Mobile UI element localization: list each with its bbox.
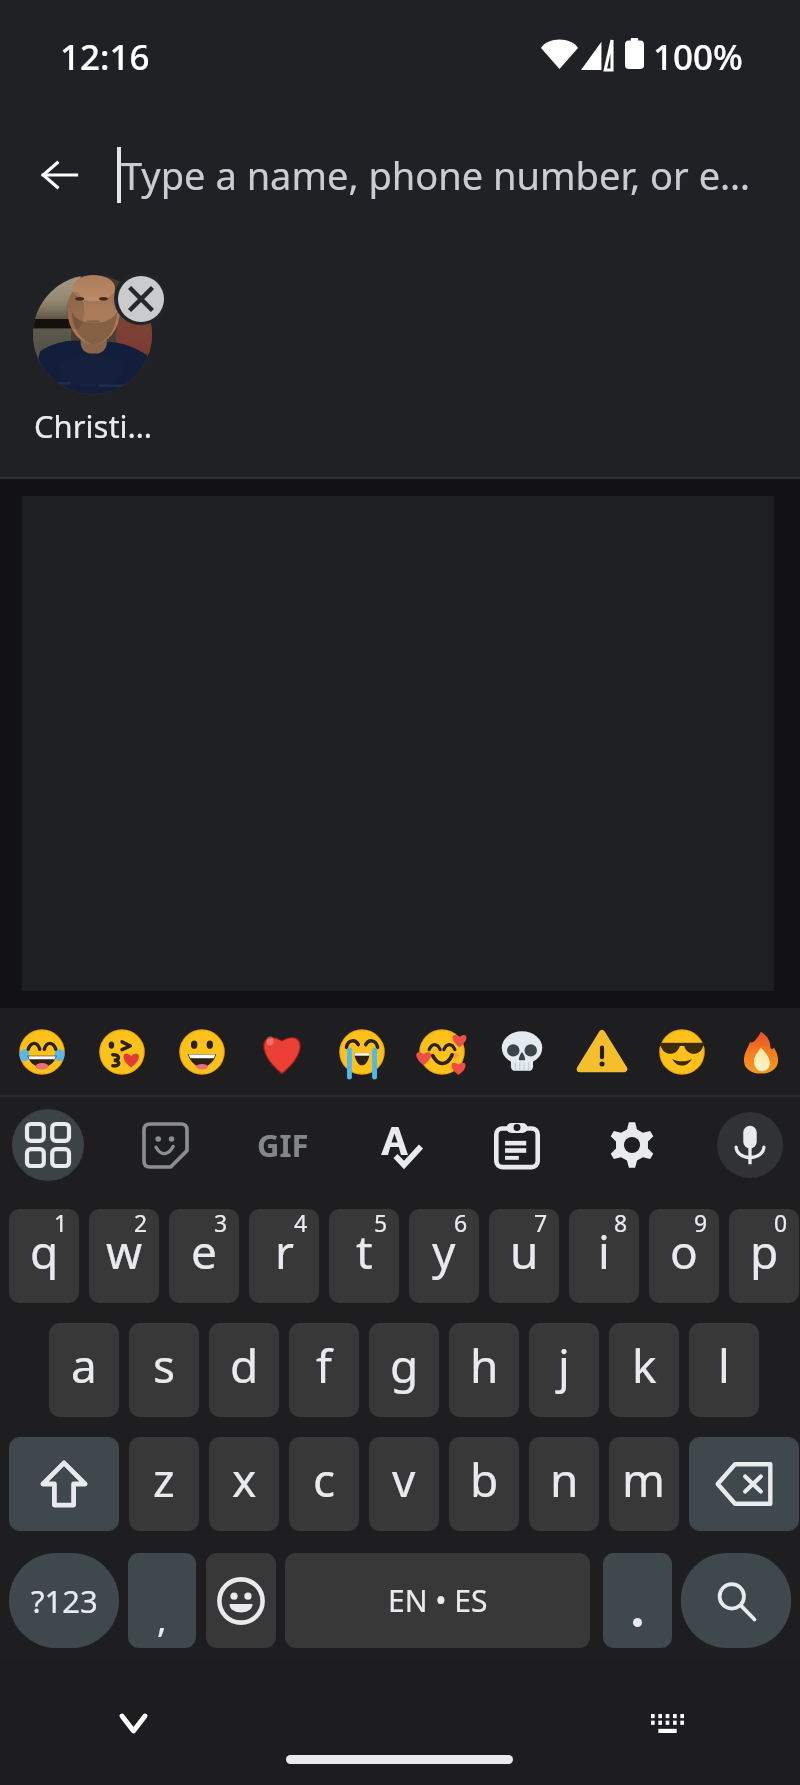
- staticText: 5: [374, 1209, 388, 1238]
- button[interactable]: g: [369, 1323, 439, 1417]
- button[interactable]: Emoji 1: [82, 1008, 162, 1095]
- button[interactable]: Search: [681, 1553, 791, 1648]
- button[interactable]: Switch keyboard: [635, 1702, 699, 1744]
- button[interactable]: Stickers: [129, 1109, 201, 1181]
- button[interactable]: r: [249, 1209, 319, 1303]
- staticText: f: [316, 1334, 332, 1397]
- staticText: x: [232, 1448, 257, 1511]
- button[interactable]: Emoji 3: [242, 1008, 322, 1095]
- staticText: 0: [774, 1209, 788, 1238]
- staticText: 2: [134, 1209, 148, 1238]
- staticText: 3: [214, 1209, 228, 1238]
- button[interactable]: Open apps: [12, 1109, 84, 1181]
- staticText: v: [392, 1448, 416, 1511]
- staticText: 100%: [653, 33, 743, 81]
- button[interactable]: Shift: [9, 1437, 119, 1531]
- button[interactable]: Emoji 9: [722, 1008, 800, 1095]
- button[interactable]: Emoji 4: [322, 1008, 402, 1095]
- button[interactable]: h: [449, 1323, 519, 1417]
- button[interactable]: m: [609, 1437, 679, 1531]
- staticText: m: [622, 1448, 666, 1511]
- staticText: i: [598, 1220, 610, 1283]
- button[interactable]: Remove recipient: [118, 276, 164, 322]
- button[interactable]: s: [129, 1323, 199, 1417]
- button[interactable]: Backspace: [689, 1437, 799, 1531]
- staticText: EN • ES: [388, 1580, 488, 1621]
- staticText: n: [550, 1448, 579, 1511]
- button[interactable]: w: [89, 1209, 159, 1303]
- staticText: Christi…: [34, 405, 153, 447]
- button[interactable]: o: [649, 1209, 719, 1303]
- button[interactable]: Contact photo: [33, 275, 152, 394]
- button[interactable]: Clipboard: [481, 1109, 553, 1181]
- staticText: 1: [54, 1209, 68, 1238]
- staticText: 8: [614, 1209, 628, 1238]
- button[interactable]: l: [689, 1323, 759, 1417]
- button[interactable]: c: [289, 1437, 359, 1531]
- staticText: 12:16: [60, 33, 150, 81]
- button[interactable]: j: [529, 1323, 599, 1417]
- staticText: 7: [534, 1209, 548, 1238]
- button[interactable]: e: [169, 1209, 239, 1303]
- staticText: 9: [694, 1209, 708, 1238]
- staticText: q: [30, 1220, 59, 1283]
- staticText: 6: [454, 1209, 468, 1238]
- button[interactable]: Emoji 7: [562, 1008, 642, 1095]
- staticText: y: [432, 1220, 456, 1283]
- staticText: 4: [294, 1209, 308, 1238]
- button[interactable]: x: [209, 1437, 279, 1531]
- button[interactable]: Emoji 2: [162, 1008, 242, 1095]
- button[interactable]: Voice input: [717, 1112, 783, 1178]
- staticText: o: [670, 1220, 698, 1283]
- staticText: GIF: [257, 1124, 309, 1166]
- staticText: a: [71, 1334, 97, 1397]
- staticText: d: [230, 1334, 259, 1397]
- button[interactable]: p: [729, 1209, 799, 1303]
- staticText: z: [153, 1448, 175, 1511]
- button[interactable]: d: [209, 1323, 279, 1417]
- button[interactable]: Spell check: [364, 1109, 436, 1181]
- button[interactable]: n: [529, 1437, 599, 1531]
- button[interactable]: [603, 1553, 672, 1648]
- button[interactable]: Back: [24, 140, 94, 210]
- staticText: t: [356, 1220, 373, 1283]
- button[interactable]: a: [49, 1323, 119, 1417]
- staticText: k: [632, 1334, 657, 1397]
- button[interactable]: k: [609, 1323, 679, 1417]
- button[interactable]: ?123: [9, 1553, 119, 1648]
- button[interactable]: b: [449, 1437, 519, 1531]
- button[interactable]: EN • ES: [285, 1553, 590, 1648]
- button[interactable]: y: [409, 1209, 479, 1303]
- staticText: ?123: [31, 1580, 98, 1622]
- staticText: j: [558, 1334, 570, 1397]
- button[interactable]: f: [289, 1323, 359, 1417]
- staticText: ,: [157, 1594, 167, 1643]
- button[interactable]: ,: [128, 1553, 196, 1648]
- button[interactable]: u: [489, 1209, 559, 1303]
- staticText: s: [153, 1334, 176, 1397]
- staticText: r: [275, 1220, 294, 1283]
- button[interactable]: Emoji 0: [2, 1008, 82, 1095]
- button[interactable]: z: [129, 1437, 199, 1531]
- staticText: p: [750, 1220, 779, 1283]
- button[interactable]: Emoji 5: [402, 1008, 482, 1095]
- button[interactable]: Hide keyboard: [101, 1703, 165, 1743]
- button[interactable]: Emoji 8: [642, 1008, 722, 1095]
- staticText: w: [106, 1220, 143, 1283]
- button[interactable]: Emoji 6: [482, 1008, 562, 1095]
- button[interactable]: v: [369, 1437, 439, 1531]
- staticText: u: [510, 1220, 539, 1283]
- staticText: g: [390, 1334, 419, 1397]
- button[interactable]: Emoji: [206, 1553, 276, 1648]
- staticText: e: [191, 1220, 217, 1283]
- staticText: l: [718, 1334, 730, 1397]
- staticText: b: [470, 1448, 499, 1511]
- staticText: h: [470, 1334, 499, 1397]
- button[interactable]: i: [569, 1209, 639, 1303]
- button[interactable]: GIF: [247, 1109, 319, 1181]
- button[interactable]: Settings: [596, 1109, 668, 1181]
- button[interactable]: t: [329, 1209, 399, 1303]
- button[interactable]: q: [9, 1209, 79, 1303]
- staticText: Type a name, phone number, or e…: [121, 149, 751, 201]
- staticText: c: [313, 1448, 336, 1511]
